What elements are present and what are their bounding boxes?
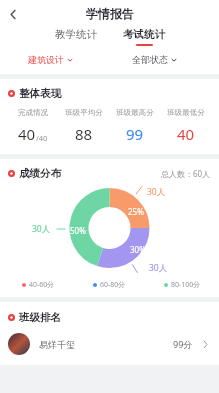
staticText: 全部状态 — [132, 54, 168, 65]
staticText: 总人数：60人 — [161, 168, 211, 179]
staticText: 班级最低分 — [167, 108, 205, 117]
staticText: 30人 — [147, 186, 166, 198]
button[interactable]: 40-60分 — [22, 280, 55, 290]
staticText: 班级平均分 — [65, 108, 103, 117]
button[interactable]: Back — [2, 3, 24, 25]
staticText: 完成情况 — [18, 108, 48, 117]
button[interactable]: 易烊千玺 — [8, 331, 209, 357]
staticText: 教学统计 — [55, 28, 97, 41]
staticText: 50% — [70, 225, 86, 236]
staticText: 25% — [128, 206, 144, 217]
staticText: 99 — [126, 124, 144, 144]
button[interactable]: 教学统计 — [50, 27, 102, 47]
button[interactable]: 全部状态 — [130, 52, 179, 67]
button[interactable]: 考试统计 — [118, 27, 170, 47]
staticText: 学情报告 — [86, 6, 134, 21]
staticText: 40-60分 — [29, 280, 55, 290]
staticText: 40 — [18, 124, 36, 144]
staticText: 30% — [130, 244, 146, 255]
staticText: 班级最高分 — [116, 108, 154, 117]
staticText: 考试统计 — [123, 28, 165, 41]
staticText: 30人 — [149, 262, 168, 274]
button[interactable]: 60-80分 — [93, 280, 126, 290]
staticText: 整体表现 — [19, 87, 61, 100]
staticText: 88 — [75, 124, 93, 144]
staticText: 80-100分 — [171, 280, 201, 290]
staticText: 成绩分布 — [19, 167, 61, 180]
staticText: 班级排名 — [19, 311, 61, 324]
staticText: 99分 — [173, 338, 193, 350]
button[interactable]: 建筑设计 — [26, 52, 75, 67]
button[interactable]: 80-100分 — [164, 280, 201, 290]
staticText: 40 — [177, 124, 195, 144]
staticText: 建筑设计 — [28, 54, 64, 65]
staticText: 30人 — [32, 223, 51, 235]
staticText: 60-80分 — [100, 280, 126, 290]
staticText: /40 — [36, 133, 48, 143]
staticText: 易烊千玺 — [39, 339, 75, 350]
